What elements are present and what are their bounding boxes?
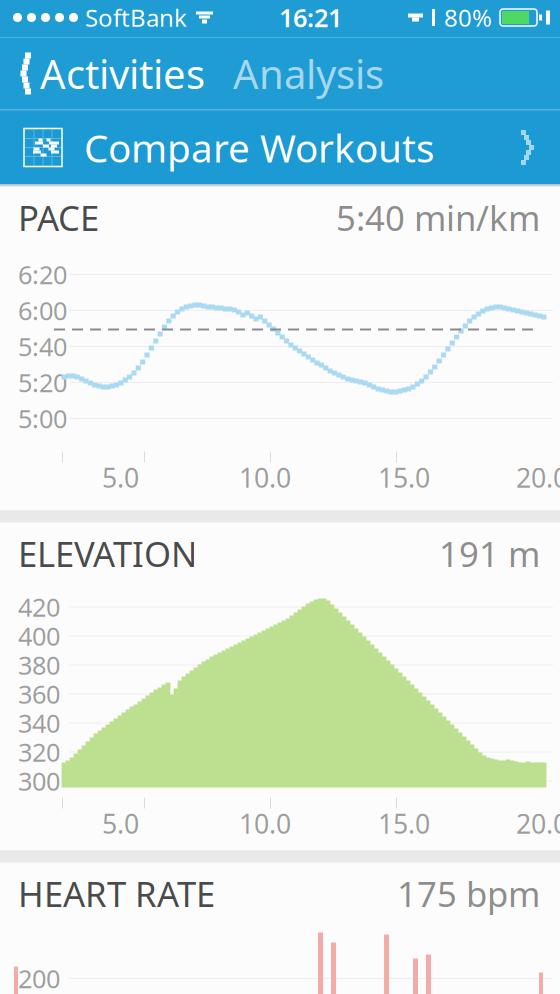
- staticText: 340: [18, 706, 60, 740]
- staticText: SoftBank: [85, 2, 187, 33]
- staticText: 6:20: [18, 258, 67, 291]
- staticText: 5:40 min/km: [336, 194, 540, 240]
- staticText: 20.0: [516, 806, 560, 841]
- staticText: 360: [18, 677, 60, 711]
- staticText: PACE: [18, 194, 99, 240]
- staticText: 10.0: [239, 806, 291, 841]
- staticText: 320: [18, 735, 60, 769]
- staticText: 420: [18, 590, 60, 624]
- staticText: 10.0: [239, 460, 291, 495]
- staticText: 5:40: [18, 330, 67, 363]
- staticText: 15.0: [378, 806, 430, 841]
- staticText: 6:00: [18, 294, 67, 327]
- staticText: 400: [18, 619, 60, 653]
- staticText: HEART RATE: [18, 870, 215, 916]
- staticText: 5:20: [18, 366, 67, 399]
- staticText: 380: [18, 648, 60, 682]
- staticText: Activities: [40, 47, 205, 100]
- staticText: ELEVATION: [18, 530, 197, 576]
- staticText: 16:21: [279, 1, 342, 34]
- staticText: Compare Workouts: [84, 122, 435, 173]
- staticText: 175 bpm: [397, 870, 540, 916]
- staticText: 200: [18, 962, 60, 994]
- staticText: Analysis: [233, 47, 384, 100]
- staticText: 191 m: [439, 530, 540, 576]
- staticText: 5.0: [102, 806, 139, 841]
- staticText: 5:00: [18, 402, 67, 435]
- button[interactable]: Compare Workouts: [0, 109, 560, 184]
- staticText: 300: [18, 764, 60, 798]
- staticText: 20.0: [516, 460, 560, 495]
- staticText: 80%: [444, 2, 492, 33]
- staticText: 5.0: [102, 460, 139, 495]
- button[interactable]: Activities: [0, 37, 219, 109]
- staticText: 15.0: [378, 460, 430, 495]
